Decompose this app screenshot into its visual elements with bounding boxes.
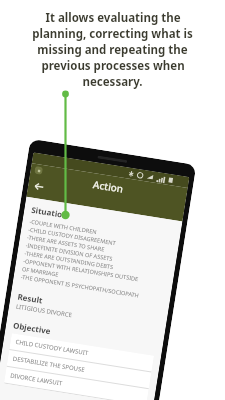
staticText: -THERE ARE ASSETS TO SHARE [26, 233, 106, 254]
button[interactable]: DIVORCE LAWSUIT [4, 367, 149, 400]
button[interactable]: Profile [34, 166, 43, 175]
button[interactable]: DESTABILIZE THE SPOUSE [7, 350, 151, 388]
staticText: Result [17, 291, 44, 306]
staticText: missing and repeating the [37, 42, 188, 58]
staticText: CHILD CUSTODY LAWSUIT [15, 338, 89, 357]
staticText: Situation [31, 204, 69, 220]
staticText: Objective [12, 319, 52, 336]
button[interactable]: CHILD CUSTODY LAWSUIT [9, 333, 154, 371]
staticText: Action [92, 177, 125, 196]
staticText: -CHILD CUSTODY DISAGREEMENT [28, 225, 117, 247]
staticText: necessary. [82, 74, 143, 90]
staticText: -INDEFINITE DIVISION OF ASSETS [25, 241, 113, 263]
staticText: -OPPONENT WITH RELATIONSHIPS OUTSIDE [23, 257, 139, 283]
staticText: DESTABILIZE THE SPOUSE [12, 355, 86, 374]
staticText: previous processes when [41, 58, 185, 74]
staticText: planning, correcting what is [32, 26, 193, 42]
staticText: -THE OPPONENT IS PSYCHOPATH/SOCIOPATH [20, 273, 140, 300]
staticText: -COUPLE WITH CHILDREN [29, 218, 97, 236]
staticText: -THERE ARE OUTSTANDING DEBTS [24, 249, 114, 271]
staticText: LITIGIOUS DIVORCE [15, 303, 73, 319]
button[interactable]: Back [30, 177, 48, 196]
staticText: DIVORCE LAWSUIT [10, 371, 63, 388]
staticText: OF MARRIAGE [21, 265, 59, 279]
staticText: It allows evaluating the [45, 10, 181, 26]
